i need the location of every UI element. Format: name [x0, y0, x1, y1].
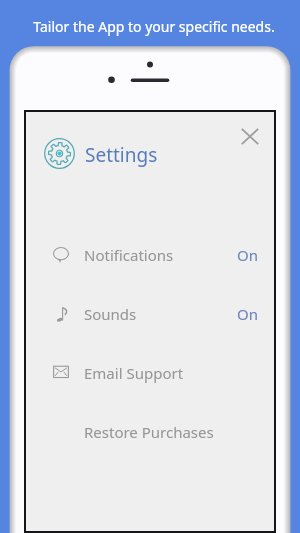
staticText: On — [237, 245, 258, 265]
button[interactable]: Close settings — [229, 116, 270, 157]
button[interactable]: Email Support — [26, 343, 274, 402]
staticText: Notifications — [84, 245, 174, 265]
staticText: Email Support — [84, 363, 184, 383]
staticText: Restore Purchases — [84, 422, 214, 442]
staticText: Settings — [85, 142, 158, 168]
staticText: Sounds — [84, 304, 137, 324]
staticText: Tailor the App to your specific needs. — [33, 17, 275, 36]
button[interactable]: Notifications — [26, 225, 274, 284]
button[interactable]: Restore Purchases — [26, 402, 274, 461]
staticText: On — [237, 304, 258, 324]
button[interactable]: Settings — [40, 134, 190, 174]
button[interactable]: Sounds — [26, 284, 274, 343]
